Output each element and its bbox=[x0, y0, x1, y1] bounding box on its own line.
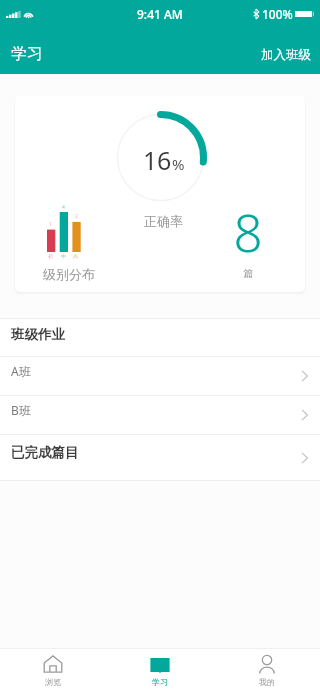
button[interactable]: 我的 bbox=[213, 649, 320, 692]
button[interactable]: 班级作业 bbox=[0, 319, 320, 356]
staticText: 正确率 bbox=[144, 213, 183, 229]
staticText: 学习 bbox=[152, 677, 168, 687]
staticText: 100% bbox=[262, 6, 293, 22]
staticText: 学习 bbox=[11, 44, 43, 64]
staticText: 班级作业 bbox=[11, 326, 65, 343]
staticText: A班 bbox=[11, 363, 31, 379]
other: 我的 bbox=[258, 654, 276, 674]
button[interactable]: 加入班级 bbox=[251, 39, 320, 71]
staticText: 篇 bbox=[243, 267, 253, 280]
other: 学习 bbox=[150, 657, 170, 673]
staticText: 8 bbox=[233, 197, 263, 266]
staticText: 16 bbox=[143, 143, 172, 177]
staticText: 初 bbox=[48, 253, 53, 259]
staticText: 我的 bbox=[259, 677, 275, 687]
button[interactable]: 学习 bbox=[106, 649, 213, 692]
other: 浏览 bbox=[43, 655, 63, 673]
staticText: 9:41 AM bbox=[137, 6, 183, 22]
staticText: 2 bbox=[75, 213, 78, 220]
staticText: 1 bbox=[49, 221, 52, 228]
staticText: B班 bbox=[11, 402, 31, 418]
staticText: 浏览 bbox=[45, 677, 61, 687]
staticText: 高 bbox=[73, 253, 78, 259]
button[interactable]: A班 bbox=[0, 357, 320, 395]
staticText: 4 bbox=[62, 204, 65, 211]
staticText: 加入班级 bbox=[261, 47, 311, 63]
button[interactable]: B班 bbox=[0, 396, 320, 434]
staticText: 级别分布 bbox=[43, 266, 95, 282]
staticText: 中 bbox=[61, 253, 66, 259]
button[interactable]: 浏览 bbox=[0, 649, 106, 692]
staticText: 已完成篇目 bbox=[11, 444, 79, 461]
staticText: % bbox=[172, 154, 185, 174]
button[interactable]: 已完成篇目 bbox=[0, 435, 320, 480]
